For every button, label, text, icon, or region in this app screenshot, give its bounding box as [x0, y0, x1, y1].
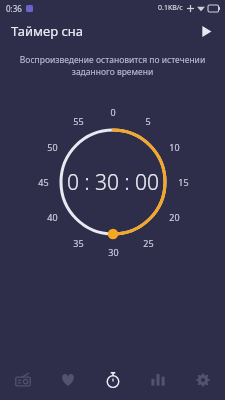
button[interactable]: Timer dial, 30 minutes: [23, 92, 203, 272]
button[interactable]: Sleep timer: [90, 360, 135, 400]
staticText: 55: [73, 115, 84, 127]
staticText: 10: [169, 141, 180, 153]
staticText: 0:36: [6, 3, 22, 14]
staticText: 0.1KB/c: [158, 3, 183, 13]
staticText: Таймер сна: [11, 22, 84, 40]
staticText: 45: [38, 176, 49, 188]
button[interactable]: Play: [193, 18, 219, 44]
staticText: 25: [143, 237, 154, 249]
staticText: 40: [47, 211, 58, 223]
button[interactable]: Favorites: [45, 360, 90, 400]
staticText: 0 : 30 : 00: [67, 168, 160, 197]
staticText: 35: [73, 237, 84, 249]
staticText: 20: [169, 211, 180, 223]
staticText: 5: [145, 115, 151, 127]
staticText: 50: [47, 141, 58, 153]
button[interactable]: Radio: [0, 360, 45, 400]
button[interactable]: Equalizer: [135, 360, 180, 400]
staticText: 15: [178, 176, 189, 188]
staticText: 30: [108, 246, 119, 258]
staticText: 0: [110, 106, 116, 118]
button[interactable]: Settings: [180, 360, 225, 400]
staticText: Воспроизведение остановится по истечении…: [12, 54, 213, 78]
